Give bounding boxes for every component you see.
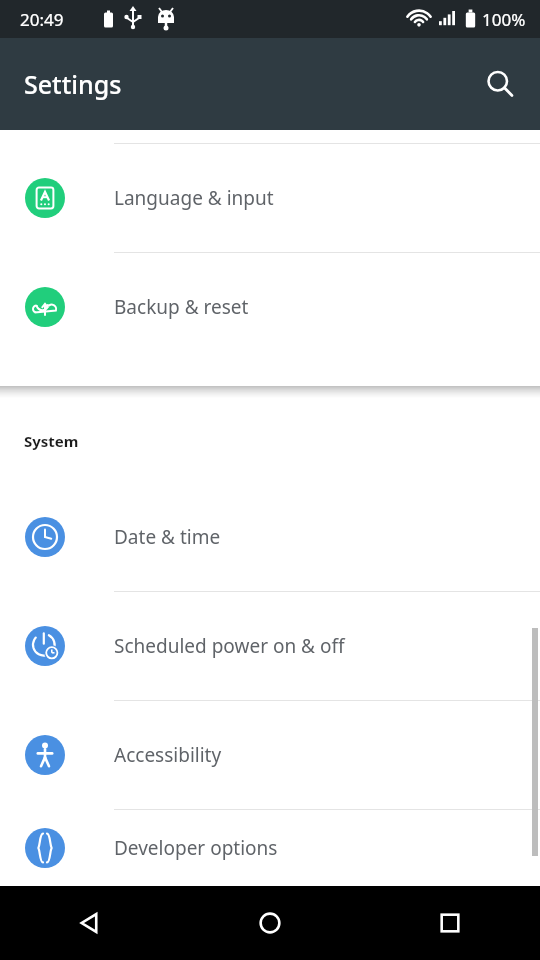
button[interactable]: Back: [0, 886, 180, 960]
staticText: Backup & reset: [114, 294, 249, 320]
staticText: Date & time: [114, 524, 221, 550]
staticText: 20:49: [20, 8, 64, 31]
button[interactable]: Date & time: [0, 483, 540, 591]
staticText: Settings: [24, 67, 122, 101]
staticText: Language & input: [114, 185, 274, 211]
staticText: Developer options: [114, 835, 278, 861]
button[interactable]: Accessibility: [0, 701, 540, 809]
button[interactable]: Language & input: [0, 144, 540, 252]
button[interactable]: Backup & reset: [0, 253, 540, 361]
button[interactable]: Search: [474, 58, 526, 110]
staticText: 100%: [482, 8, 526, 31]
button[interactable]: Recents: [360, 886, 540, 960]
staticText: System: [24, 431, 79, 451]
staticText: Accessibility: [114, 742, 222, 768]
button[interactable]: Scheduled power on & off: [0, 592, 540, 700]
button[interactable]: Home: [180, 886, 360, 960]
staticText: Scheduled power on & off: [114, 633, 345, 659]
button[interactable]: Developer options: [0, 810, 540, 886]
